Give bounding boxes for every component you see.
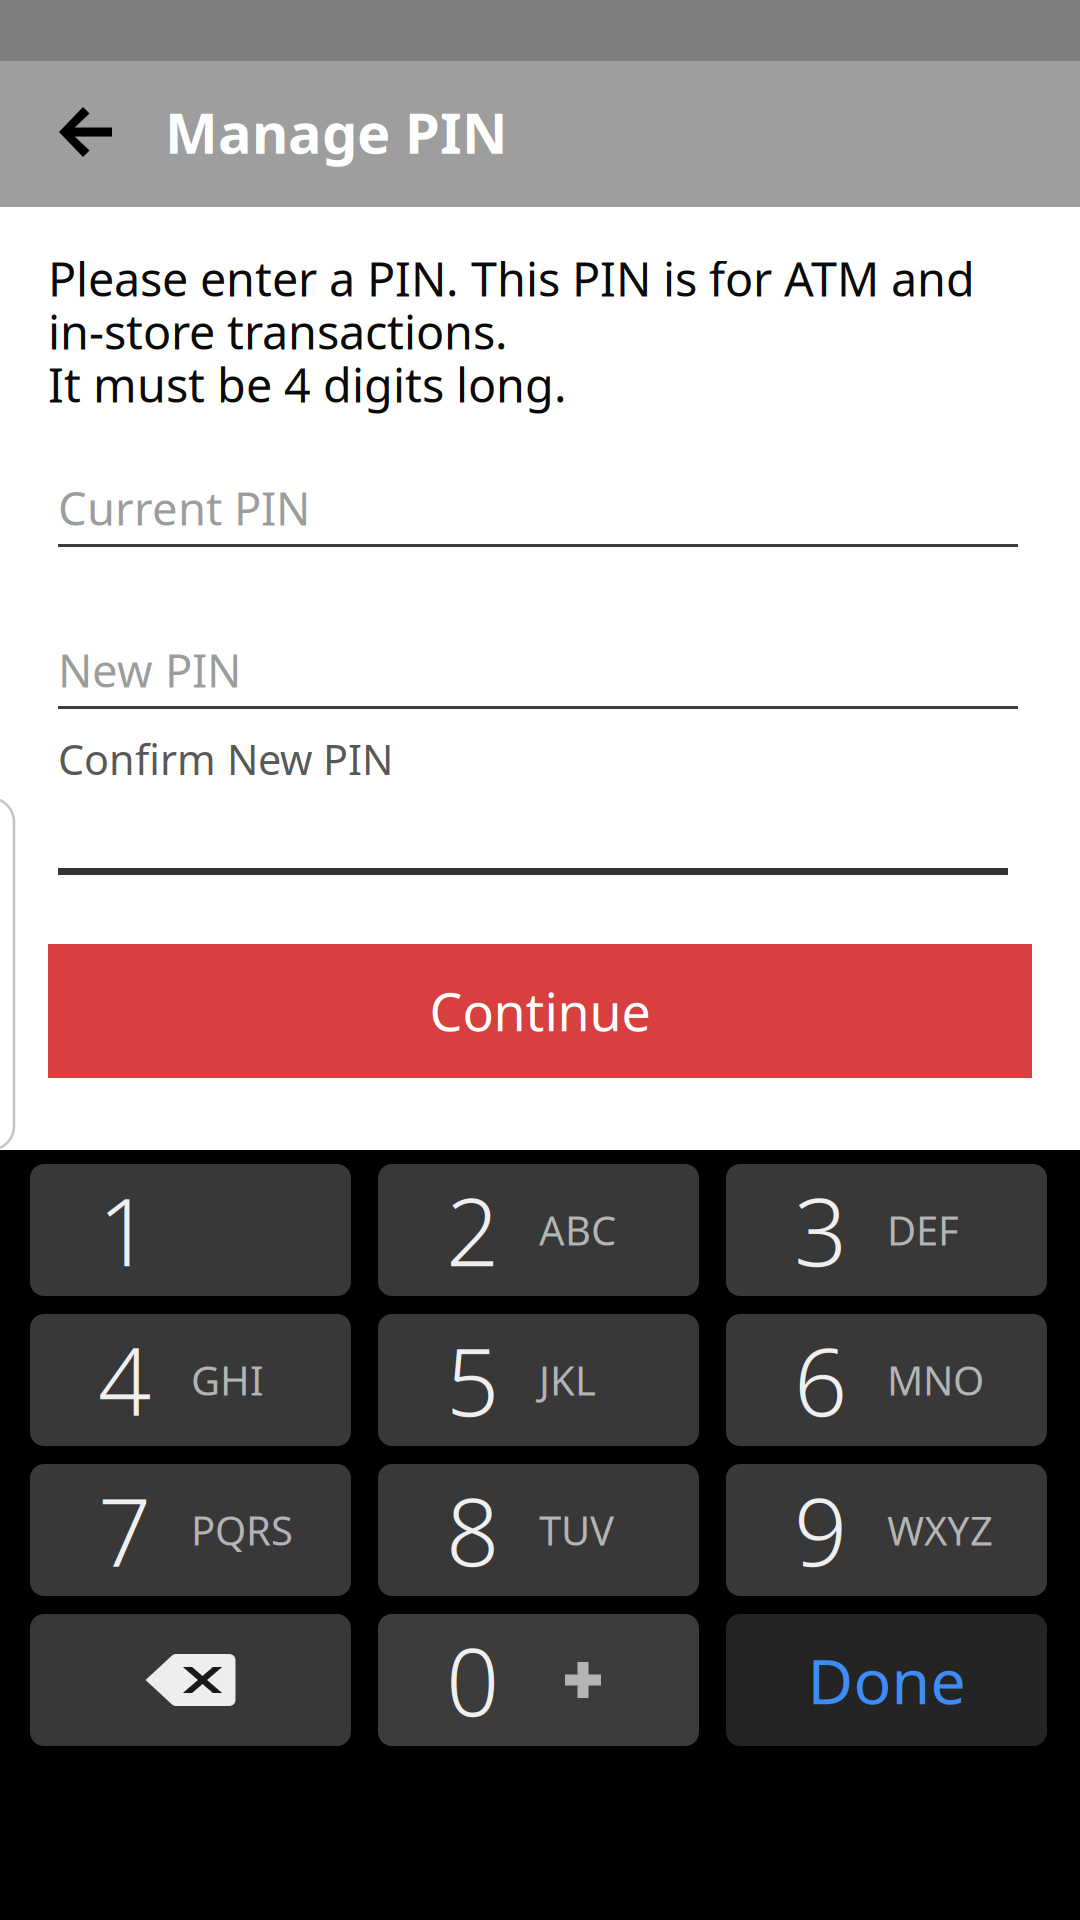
button[interactable]: 4 xyxy=(30,1314,351,1446)
staticText: 0 xyxy=(446,1618,499,1742)
button[interactable]: Back xyxy=(44,88,128,176)
staticText: GHI xyxy=(191,1353,264,1406)
button[interactable]: 5 xyxy=(378,1314,699,1446)
staticText: Manage PIN xyxy=(165,95,508,169)
staticText: MNO xyxy=(887,1353,984,1406)
button[interactable]: 8 xyxy=(378,1464,699,1596)
staticText: 5 xyxy=(446,1318,499,1442)
staticText: Please enter a PIN. This PIN is for ATM … xyxy=(48,247,975,309)
staticText: Confirm New PIN xyxy=(58,732,393,786)
staticText: TUV xyxy=(539,1503,614,1556)
button[interactable]: 1 xyxy=(30,1164,351,1296)
button[interactable]: 7 xyxy=(30,1464,351,1596)
staticText: in-store transactions. xyxy=(48,300,508,362)
button[interactable]: Delete xyxy=(30,1614,351,1746)
button[interactable]: New PIN xyxy=(58,644,1018,709)
staticText: 1 xyxy=(98,1168,151,1292)
staticText: 3 xyxy=(794,1168,847,1292)
button[interactable]: 6 xyxy=(726,1314,1047,1446)
staticText: 9 xyxy=(794,1468,847,1592)
staticText: It must be 4 digits long. xyxy=(48,353,567,415)
button[interactable]: Current PIN xyxy=(58,482,1018,547)
staticText: Done xyxy=(807,1638,965,1722)
staticText: DEF xyxy=(887,1203,959,1256)
staticText: New PIN xyxy=(58,640,241,700)
staticText: 8 xyxy=(446,1468,499,1592)
button[interactable]: 3 xyxy=(726,1164,1047,1296)
button[interactable]: 0 xyxy=(378,1614,699,1746)
staticText: 2 xyxy=(446,1168,499,1292)
button[interactable]: Done xyxy=(726,1614,1047,1746)
staticText: ABC xyxy=(539,1203,616,1256)
button[interactable]: Confirm New PIN xyxy=(58,733,1018,875)
button[interactable]: Continue xyxy=(48,944,1032,1078)
staticText: Continue xyxy=(429,976,650,1046)
staticText: 4 xyxy=(98,1318,151,1442)
staticText: PQRS xyxy=(191,1503,293,1556)
staticText: 7 xyxy=(98,1468,151,1592)
staticText: Current PIN xyxy=(58,478,310,538)
staticText: WXYZ xyxy=(887,1503,993,1556)
staticText: 6 xyxy=(794,1318,847,1442)
button[interactable]: 2 xyxy=(378,1164,699,1296)
button[interactable]: 9 xyxy=(726,1464,1047,1596)
staticText: JKL xyxy=(539,1353,596,1406)
